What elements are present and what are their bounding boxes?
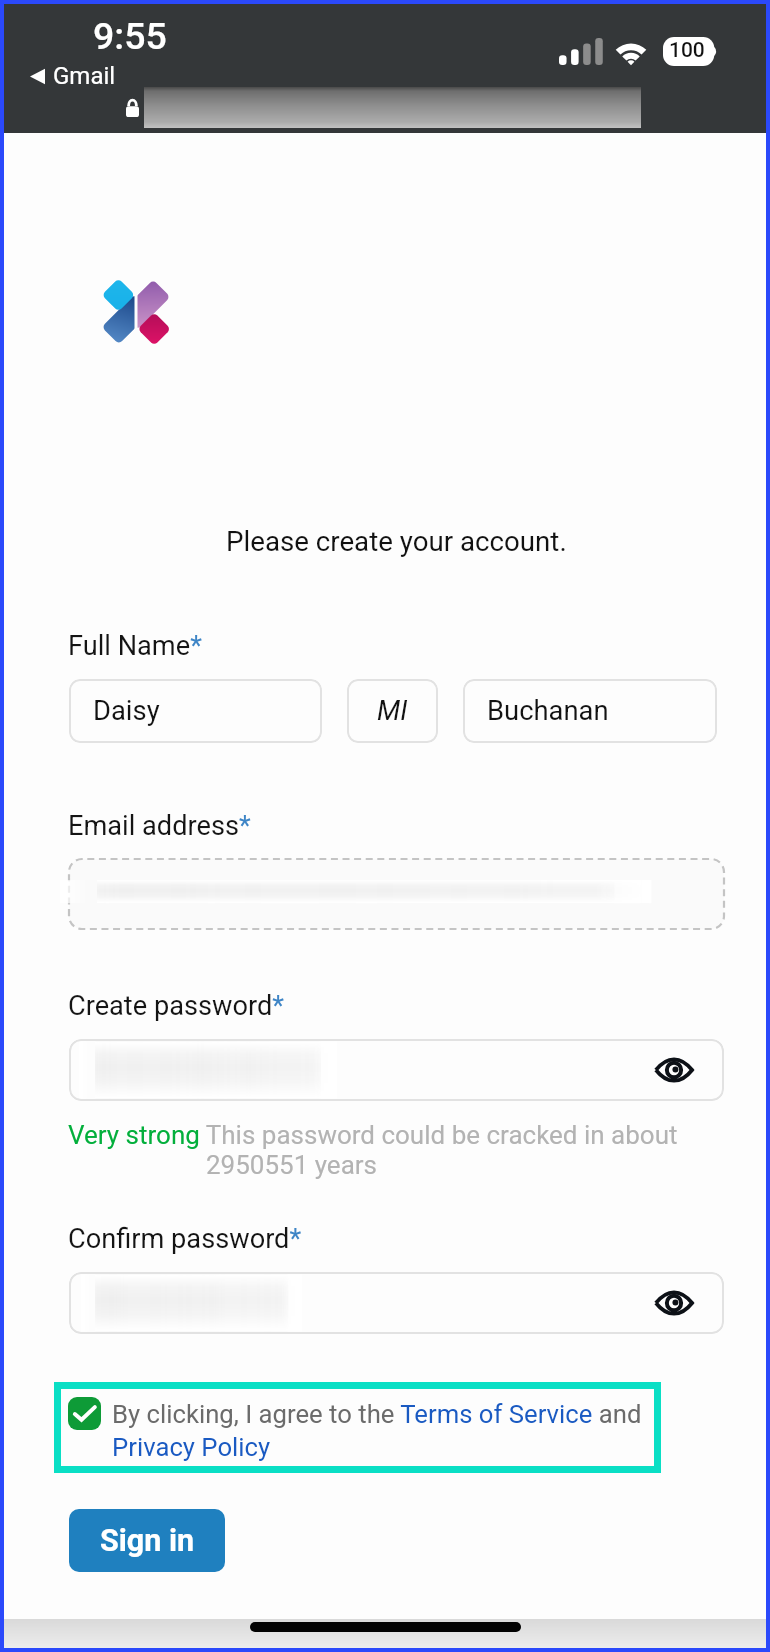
staticText: Confirm password* (68, 1223, 302, 1255)
staticText: By clicking, I agree to the Terms of Ser… (112, 1399, 659, 1462)
button[interactable]: Show password (651, 1280, 697, 1326)
staticText: Buchanan (487, 695, 609, 727)
button[interactable]: Back to Gmail (30, 62, 116, 90)
staticText: Daisy (93, 695, 160, 727)
staticText: Sign in (100, 1523, 195, 1559)
button[interactable]: Buchanan (463, 679, 717, 743)
button[interactable]: MI (347, 679, 438, 743)
staticText: 9:55 (93, 14, 167, 58)
button[interactable]: Email address (69, 859, 724, 929)
staticText: Full Name* (68, 630, 202, 662)
staticText: Please create your account. (226, 525, 567, 557)
button[interactable]: By clicking, I agree to the Terms of Ser… (54, 1382, 661, 1473)
staticText: MI (377, 695, 408, 727)
button[interactable]: Show password (69, 1039, 724, 1101)
button[interactable]: Daisy (69, 679, 322, 743)
button[interactable]: Show password (651, 1047, 697, 1093)
staticText: 2950551 years (206, 1150, 378, 1180)
button[interactable]: Show password (69, 1272, 724, 1334)
staticText: Very strong This password could be crack… (68, 1120, 678, 1150)
staticText: Email address* (68, 810, 251, 842)
button[interactable]: Sign in (69, 1509, 225, 1572)
staticText: Gmail (53, 62, 116, 90)
staticText: Create password* (68, 990, 284, 1022)
staticText: 100 (669, 38, 705, 63)
